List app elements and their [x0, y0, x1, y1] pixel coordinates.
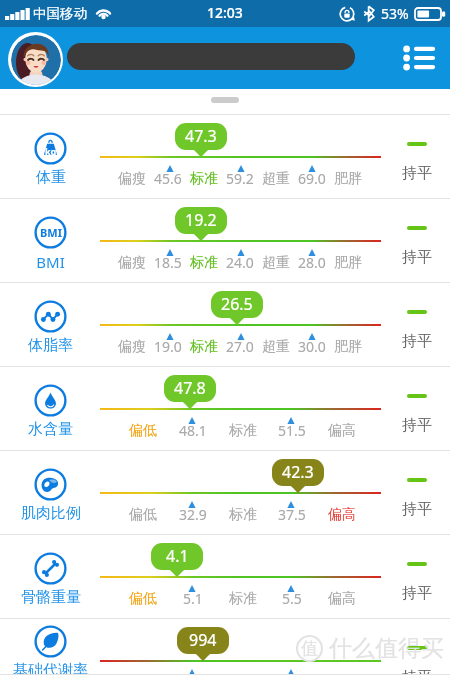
staticText: BMI — [36, 252, 65, 272]
staticText: 标准 — [190, 338, 218, 356]
button[interactable]: 肌肉比例 — [0, 451, 450, 535]
staticText: 肌肉比例 — [21, 504, 81, 523]
staticText: 37.5 — [278, 505, 306, 524]
staticText: 持平 — [402, 668, 432, 675]
staticText: 持平 — [402, 584, 432, 603]
staticText: 持平 — [402, 416, 432, 435]
staticText: kg — [45, 145, 57, 157]
staticText: 47.3 — [185, 125, 217, 147]
staticText: 994 — [189, 629, 217, 651]
staticText: 标准 — [190, 254, 218, 272]
staticText: 中国移动 — [33, 5, 87, 22]
button[interactable]: 骨骼重量 — [0, 535, 450, 619]
staticText: 偏低 — [129, 422, 157, 440]
staticText: 27.0 — [226, 337, 254, 356]
staticText: 体重 — [36, 168, 66, 187]
staticText: 5.1 — [183, 589, 203, 608]
staticText: 偏高 — [328, 590, 356, 608]
staticText: 超重 — [262, 254, 290, 272]
staticText: 42.3 — [282, 461, 314, 483]
staticText: 48.1 — [179, 421, 207, 440]
staticText: 26.5 — [221, 293, 253, 315]
staticText: 持平 — [402, 164, 432, 183]
button[interactable]: 体脂率 — [0, 283, 450, 367]
staticText: 水含量 — [28, 420, 73, 439]
staticText: 肥胖 — [334, 254, 362, 272]
staticText: 28.0 — [298, 253, 326, 272]
staticText: 4.1 — [166, 545, 189, 567]
staticText: 32.9 — [179, 505, 207, 524]
staticText: 18.5 — [154, 253, 182, 272]
button[interactable]: BMI — [0, 199, 450, 283]
staticText: 标准 — [229, 590, 257, 608]
staticText: 骨骼重量 — [21, 588, 81, 607]
staticText: 偏瘦 — [118, 170, 146, 188]
staticText: 19.0 — [154, 337, 182, 356]
staticText: 47.8 — [174, 377, 206, 399]
staticText: 1250 — [276, 673, 309, 675]
staticText: BMI — [40, 225, 62, 240]
staticText: 肥胖 — [334, 170, 362, 188]
staticText: 19.2 — [185, 209, 217, 231]
staticText: 偏高 — [328, 422, 356, 440]
staticText: 肥胖 — [334, 338, 362, 356]
staticText: 持平 — [402, 248, 432, 267]
staticText: 偏低 — [129, 506, 157, 524]
staticText: 59.2 — [226, 169, 254, 188]
staticText: 基础代谢率 — [13, 661, 88, 675]
button[interactable]: Menu — [394, 34, 442, 82]
button[interactable]: 基础代谢率 — [0, 619, 450, 675]
staticText: 12:03 — [207, 3, 243, 22]
staticText: 30.0 — [298, 337, 326, 356]
staticText: 标准 — [190, 170, 218, 188]
staticText: 偏低 — [129, 590, 157, 608]
staticText: 超重 — [262, 170, 290, 188]
button[interactable]: Profile avatar — [8, 32, 63, 87]
staticText: 持平 — [402, 500, 432, 519]
staticText: 5.5 — [282, 589, 302, 608]
staticText: 持平 — [402, 332, 432, 351]
staticText: 53% — [381, 4, 409, 23]
staticText: 什么值得买 — [329, 634, 444, 663]
staticText: 标准 — [229, 422, 257, 440]
button[interactable]: kg — [0, 115, 450, 199]
staticText: 超重 — [262, 338, 290, 356]
staticText: 体脂率 — [28, 336, 73, 355]
button[interactable]: 水含量 — [0, 367, 450, 451]
staticText: 69.0 — [298, 169, 326, 188]
staticText: 24.0 — [226, 253, 254, 272]
staticText: 偏瘦 — [118, 254, 146, 272]
staticText: 值 — [301, 638, 318, 659]
staticText: 51.5 — [278, 421, 306, 440]
staticText: 偏高 — [328, 506, 356, 524]
staticText: 45.6 — [154, 169, 182, 188]
staticText: 1180 — [176, 673, 209, 675]
staticText: 标准 — [229, 506, 257, 524]
staticText: 偏瘦 — [118, 338, 146, 356]
